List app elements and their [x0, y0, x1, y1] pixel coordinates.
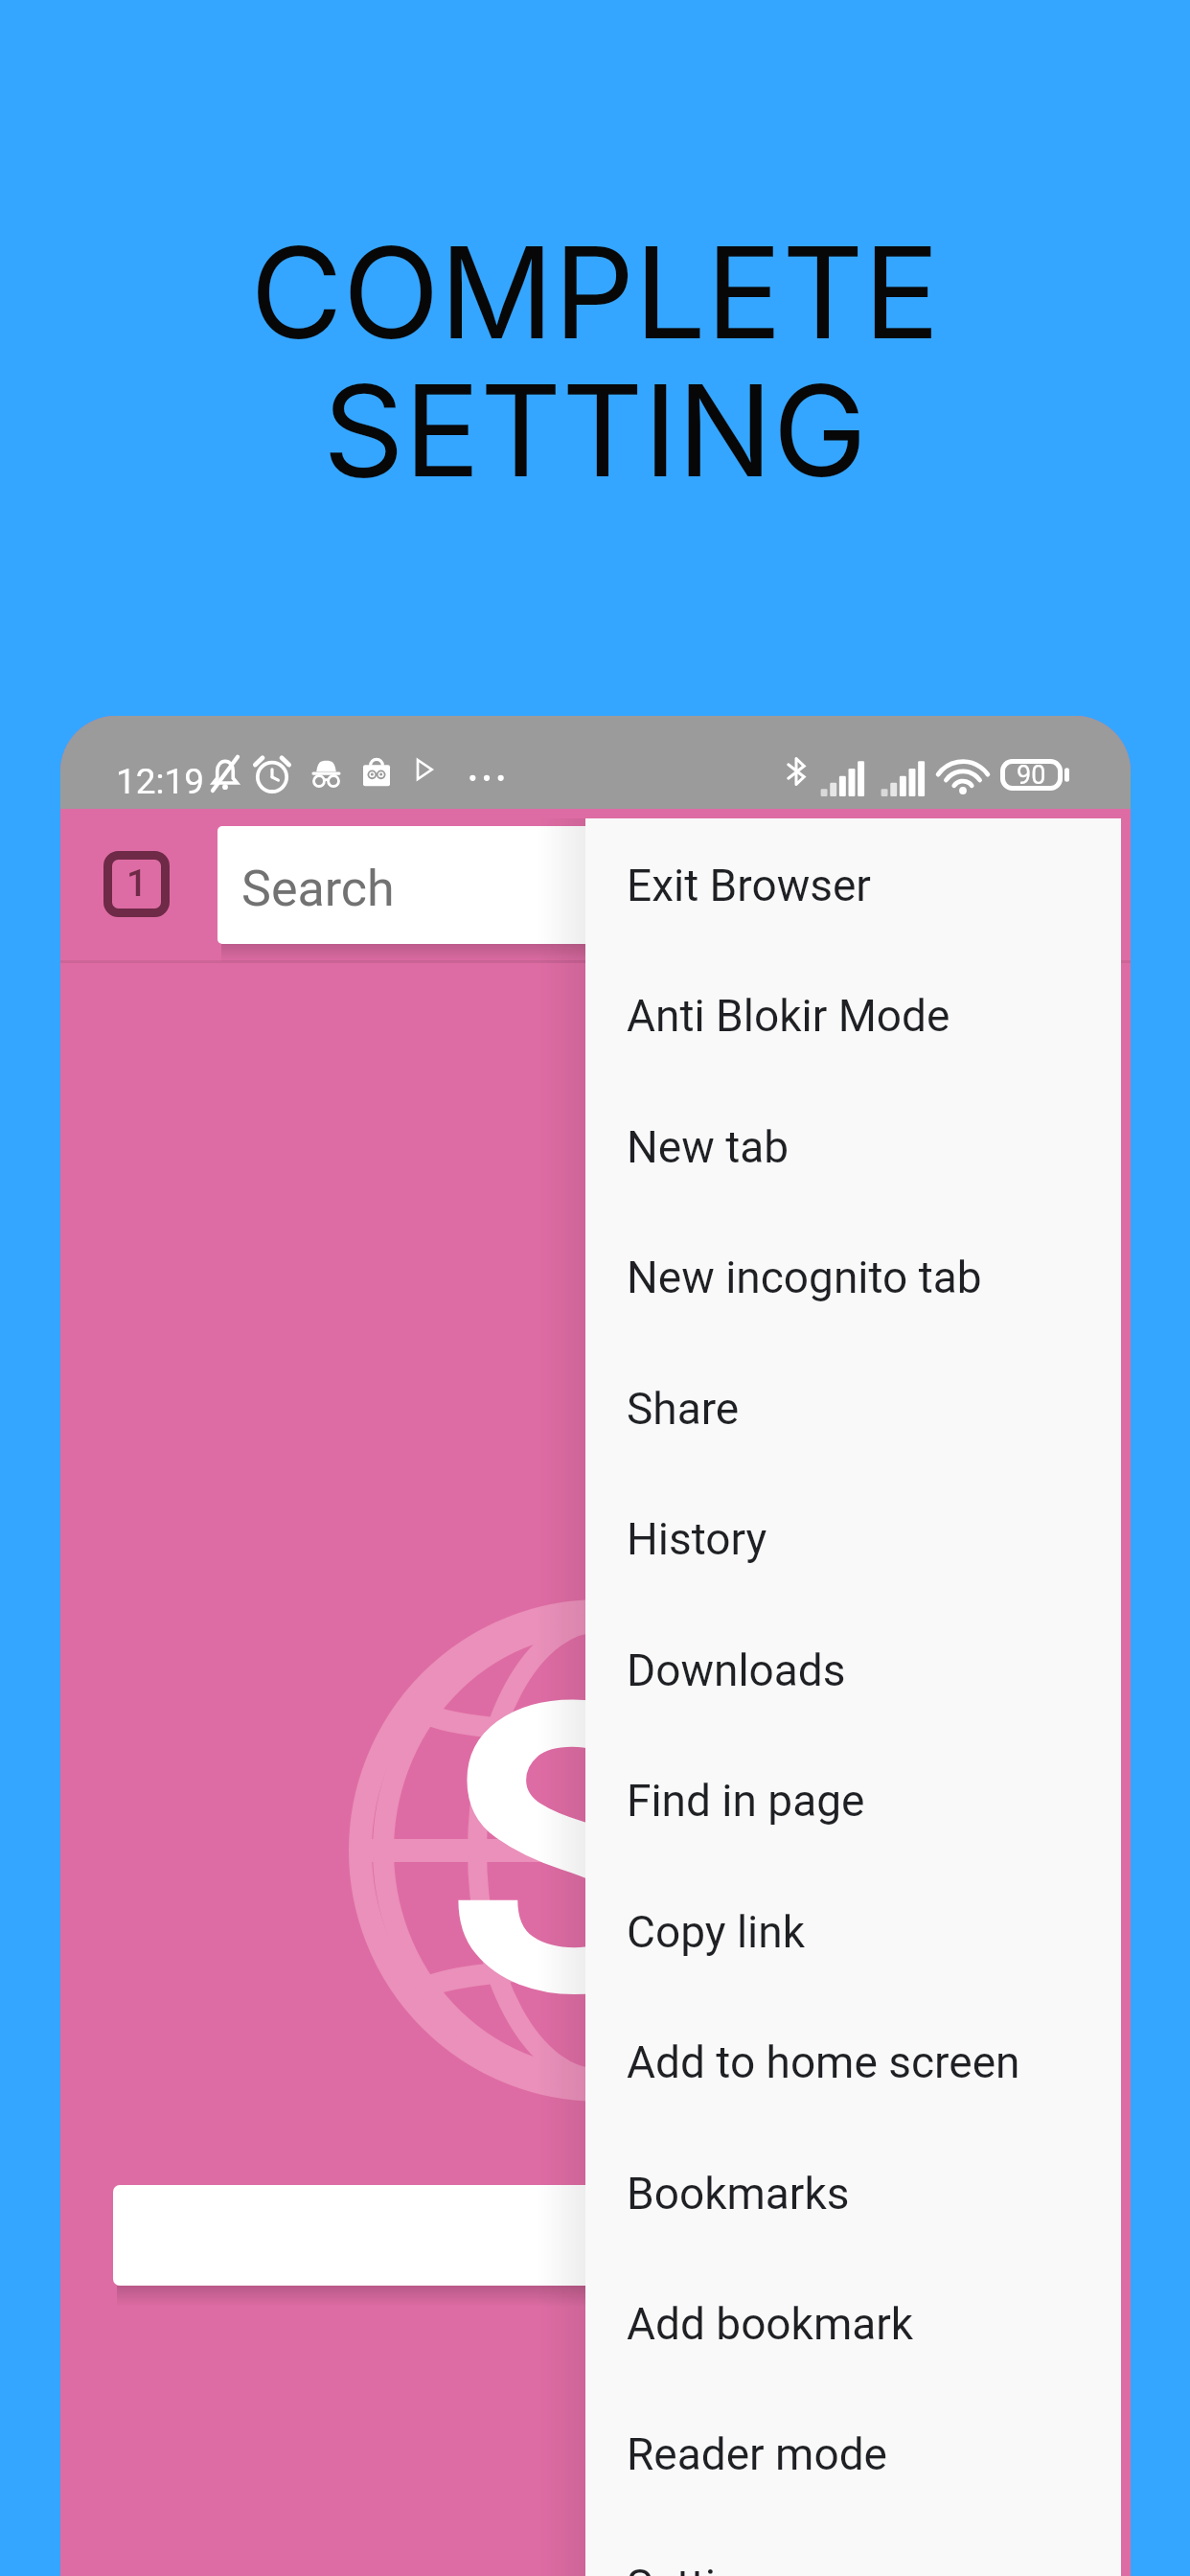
staticText: Anti Blokir Mode	[627, 990, 950, 1042]
staticText: 1	[126, 862, 148, 906]
staticText: Exit Browser	[627, 860, 871, 911]
staticText: Add bookmark	[627, 2298, 914, 2350]
staticText: COMPLETE SETTING	[250, 216, 940, 507]
button[interactable]: New incognito tab	[585, 1211, 1121, 1343]
button[interactable]: New tab	[585, 1081, 1121, 1212]
button[interactable]: Search	[217, 826, 1087, 944]
staticText: History	[627, 1513, 767, 1565]
button[interactable]: Bookmarks	[585, 2127, 1121, 2259]
staticText: New incognito tab	[627, 1252, 982, 1303]
staticText: Bookmarks	[627, 2168, 850, 2219]
button[interactable]: Exit Browser	[585, 819, 1121, 951]
button[interactable]: Add bookmark	[585, 2258, 1121, 2389]
staticText: Search	[241, 860, 395, 918]
staticText: Downloads	[627, 1644, 846, 1696]
staticText: Find in page	[627, 1775, 865, 1827]
button[interactable]: Settings	[585, 2519, 1121, 2576]
staticText: Add to home screen	[627, 2036, 1020, 2088]
button[interactable]: Copy link	[585, 1866, 1121, 1997]
staticText: Share	[627, 1383, 740, 1435]
button[interactable]: Add to home screen	[585, 1996, 1121, 2127]
button[interactable]: Find in page	[585, 1735, 1121, 1866]
button[interactable]: Downloads	[585, 1604, 1121, 1736]
staticText: New tab	[627, 1121, 790, 1173]
staticText: Reader mode	[627, 2428, 888, 2480]
button[interactable]: History	[585, 1473, 1121, 1604]
staticText: 12:19	[116, 761, 205, 802]
staticText: S	[445, 1616, 693, 2088]
staticText: Copy link	[627, 1906, 806, 1958]
button[interactable]: Tabs	[103, 851, 170, 917]
staticText: 90	[1017, 760, 1046, 791]
button[interactable]: Share	[585, 1343, 1121, 1474]
staticText: Settings	[627, 2560, 788, 2576]
button[interactable]: Reader mode	[585, 2388, 1121, 2519]
button[interactable]: Anti Blokir Mode	[585, 950, 1121, 1081]
